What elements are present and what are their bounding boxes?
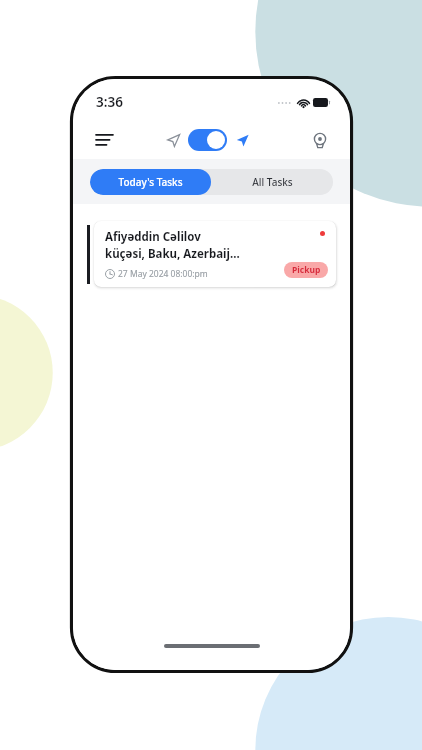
- staticText: Afiyəddin Cəlilov: [105, 229, 201, 245]
- button[interactable]: All Tasks: [211, 169, 333, 195]
- button[interactable]: Location: [304, 124, 336, 156]
- button[interactable]: Menu: [87, 123, 121, 157]
- button[interactable]: Pickup: [284, 262, 328, 278]
- button[interactable]: Toggle tracking: [188, 129, 227, 151]
- staticText: 27 May 2024 08:00:pm: [118, 268, 208, 280]
- staticText: küçəsi, Baku, Azerbaij...: [105, 246, 240, 262]
- staticText: Today's Tasks: [118, 175, 183, 189]
- button[interactable]: Today's Tasks: [90, 169, 211, 195]
- staticText: Pickup: [292, 264, 321, 276]
- button[interactable]: Navigation off: [162, 129, 184, 151]
- staticText: All Tasks: [252, 175, 293, 189]
- staticText: 3:36: [96, 93, 123, 111]
- button[interactable]: Navigation on: [231, 129, 253, 151]
- button[interactable]: Afiyəddin Cəlilov: [87, 221, 336, 287]
